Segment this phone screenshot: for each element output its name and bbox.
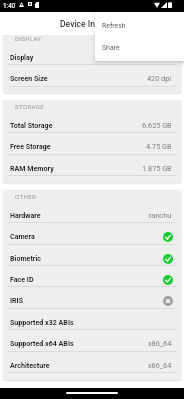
staticText: Face ID (10, 275, 34, 283)
staticText: Supported x64 ABIs (10, 339, 74, 347)
staticText: Supported x32 ABIs (10, 318, 74, 326)
button[interactable]: Supported x64 ABIs (3, 329, 181, 350)
button[interactable]: Screen Size (3, 64, 181, 85)
staticText: IRIS (10, 296, 24, 304)
staticText: 1.875 GB (142, 164, 172, 173)
staticText: x86_64 (148, 339, 172, 348)
staticText: Refresh (102, 22, 126, 30)
staticText: DISPLAY (15, 35, 42, 42)
button[interactable]: Display (3, 43, 181, 64)
button[interactable]: RAM Memory (3, 154, 181, 175)
staticText: STORAGE (15, 103, 45, 110)
button[interactable]: Supported x32 ABIs (3, 308, 181, 329)
staticText: Device Info (60, 19, 103, 29)
button[interactable]: Camera (3, 222, 181, 243)
staticText: Architecture (10, 361, 50, 369)
staticText: Camera (10, 232, 35, 240)
staticText: OTHER (15, 193, 37, 200)
staticText: 1:40 (3, 2, 16, 10)
button[interactable]: IRIS (3, 286, 181, 307)
button[interactable]: Free Storage (3, 132, 181, 153)
staticText: Biometric (10, 254, 41, 262)
staticText: Screen Size (10, 74, 48, 82)
staticText: Display (10, 53, 34, 61)
staticText: Hardware (10, 211, 41, 219)
staticText: Free Storage (10, 142, 51, 150)
staticText: 4.75 GB (146, 142, 172, 151)
other: Supported (163, 275, 173, 285)
button[interactable]: Total Storage (3, 111, 181, 132)
other: Not supported (163, 296, 173, 306)
other: Supported (163, 254, 173, 264)
button[interactable]: Architecture (3, 351, 181, 372)
button[interactable]: Biometric (3, 244, 181, 265)
staticText: Total Storage (10, 121, 53, 129)
button[interactable]: Hardware (3, 201, 181, 222)
staticText: ranchu (149, 211, 172, 220)
button[interactable]: Refresh (95, 14, 184, 36)
staticText: Share (102, 44, 120, 52)
staticText: x86_64 (148, 361, 172, 370)
staticText: RAM Memory (10, 164, 54, 172)
button[interactable]: Face ID (3, 265, 181, 286)
other: Supported (163, 232, 173, 242)
staticText: 6.625 GB (142, 121, 172, 130)
button[interactable]: Share (95, 36, 184, 58)
staticText: 420 dpi (147, 74, 172, 83)
